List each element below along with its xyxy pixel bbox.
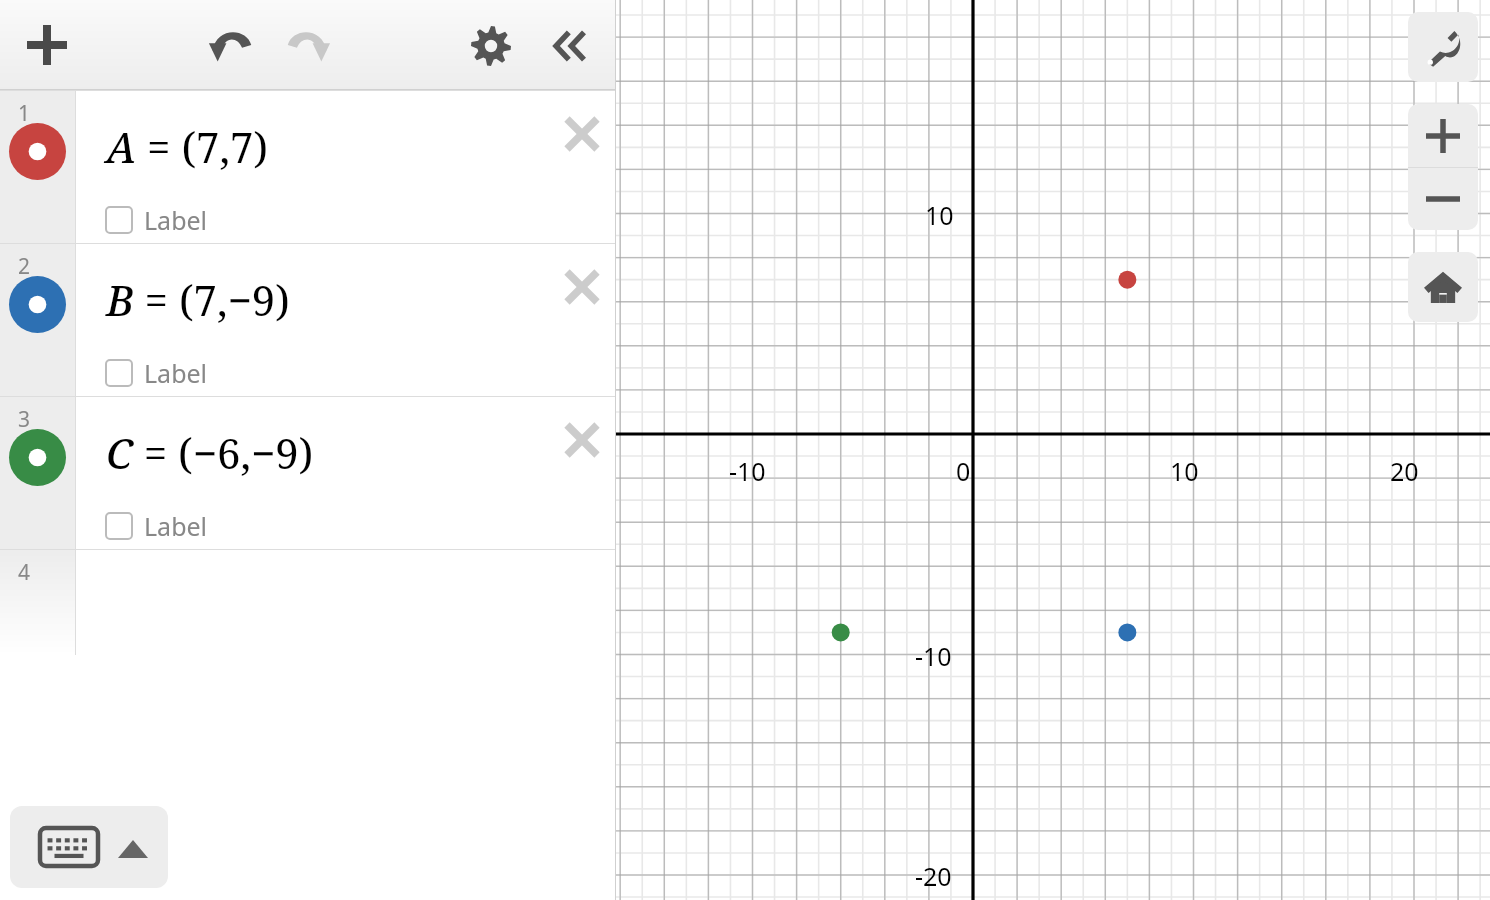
staticText: -10	[915, 639, 952, 673]
button[interactable]: Label	[106, 509, 208, 543]
button[interactable]: Label	[106, 356, 208, 390]
staticText: 3	[18, 405, 31, 434]
staticText: 2	[18, 252, 31, 281]
button[interactable]: 1	[0, 90, 616, 243]
staticText: C = (−6,−9)	[106, 424, 314, 481]
button[interactable]: Zoom in	[1408, 104, 1478, 167]
button[interactable]: Redo	[277, 14, 339, 76]
staticText: A = (7,7)	[106, 118, 268, 175]
staticText: 1	[18, 99, 31, 128]
button[interactable]: Delete expression 1	[556, 108, 608, 160]
button[interactable]: 3	[0, 396, 616, 549]
button[interactable]: Show keypad	[10, 806, 168, 888]
staticText: 0	[956, 454, 971, 488]
button[interactable]: 2	[0, 243, 616, 396]
staticText: 10	[925, 198, 954, 232]
button[interactable]: Hide expression list	[538, 16, 598, 76]
button[interactable]: Graph settings	[1408, 12, 1478, 82]
staticText: 4	[18, 558, 31, 587]
staticText: -20	[915, 859, 952, 893]
button[interactable]: Zoom out	[1408, 167, 1478, 230]
button[interactable]: Label	[106, 203, 208, 237]
staticText: B = (7,−9)	[106, 271, 290, 328]
staticText: Label	[144, 509, 208, 543]
button[interactable]: Toggle point A	[9, 123, 66, 180]
button[interactable]: Settings	[461, 16, 521, 76]
button[interactable]: Default viewport	[1408, 252, 1478, 322]
button[interactable]: Toggle point C	[9, 429, 66, 486]
staticText: Label	[144, 203, 208, 237]
button[interactable]: Delete expression 3	[556, 414, 608, 466]
staticText: 20	[1390, 454, 1419, 488]
button[interactable]: Undo	[200, 14, 262, 76]
staticText: -10	[729, 454, 766, 488]
staticText: Label	[144, 356, 208, 390]
staticText: 10	[1170, 454, 1199, 488]
button[interactable]: Add expression	[16, 14, 78, 76]
button[interactable]: Delete expression 2	[556, 261, 608, 313]
button[interactable]: Toggle point B	[9, 276, 66, 333]
